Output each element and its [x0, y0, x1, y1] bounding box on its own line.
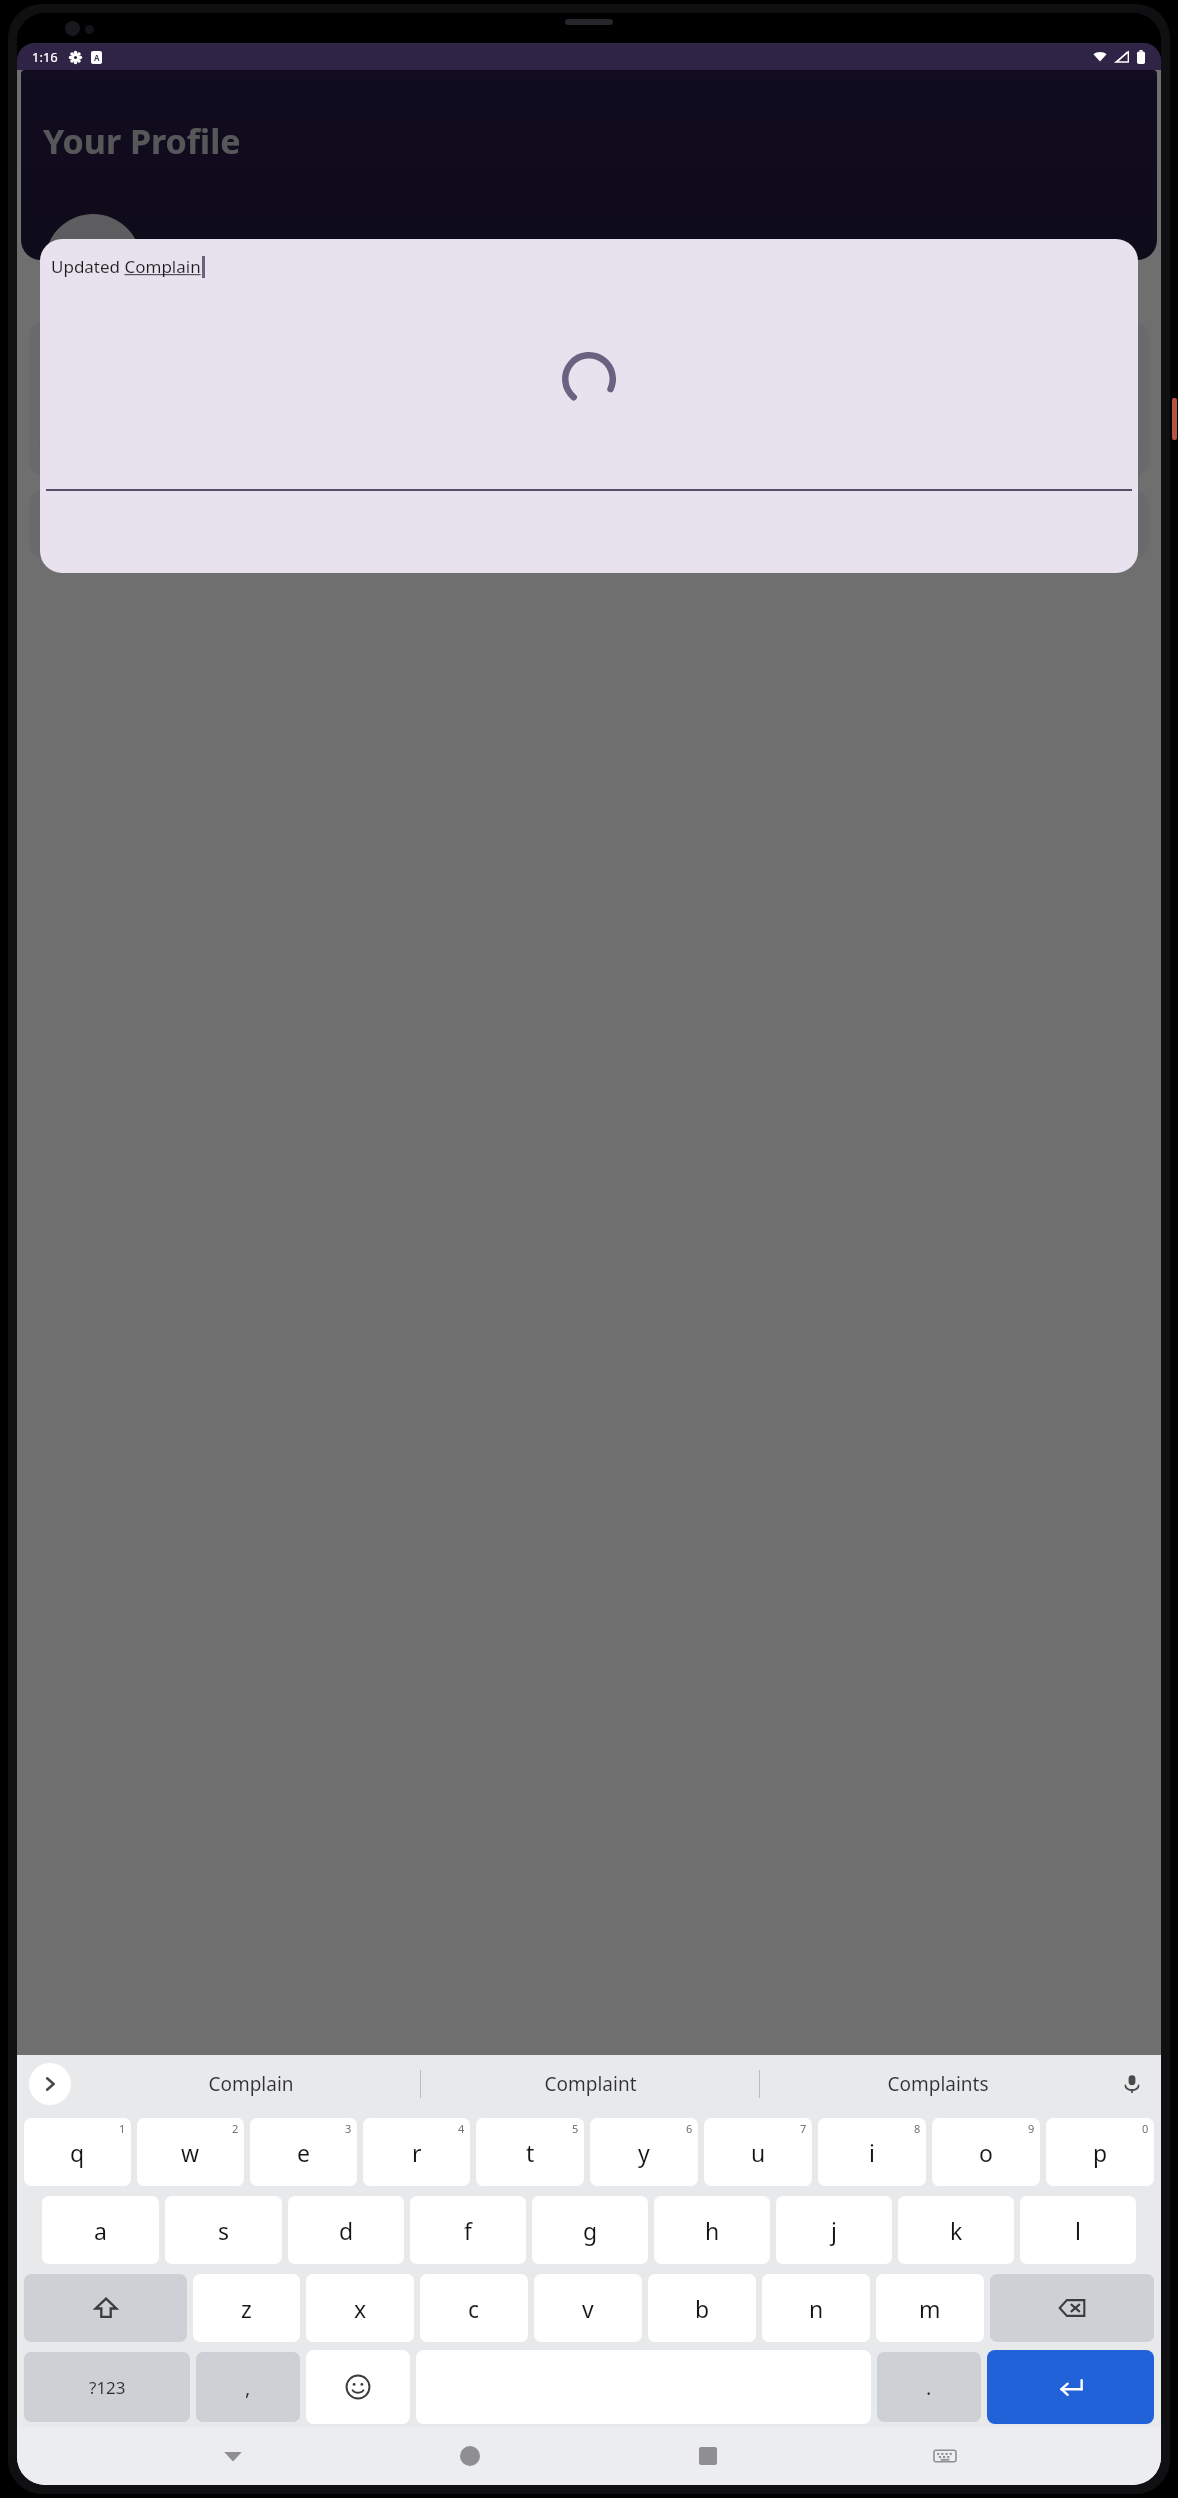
staticText: 4	[458, 2121, 465, 2136]
button[interactable]: u	[704, 2118, 812, 2186]
button[interactable]: i	[818, 2118, 926, 2186]
staticText: A	[94, 52, 100, 63]
staticText: p	[1093, 2137, 1108, 2168]
button[interactable]: Backspace	[990, 2274, 1154, 2342]
staticText: m	[919, 2293, 941, 2324]
button[interactable]: Complaints	[760, 2055, 1115, 2113]
button[interactable]: t	[476, 2118, 584, 2186]
staticText: i	[869, 2137, 875, 2168]
button[interactable]: r	[363, 2118, 470, 2186]
staticText: 0	[1142, 2121, 1149, 2136]
staticText: q	[70, 2137, 85, 2168]
staticText: 3	[345, 2121, 352, 2136]
button[interactable]: Switch keyboard	[923, 2434, 967, 2478]
staticText: d	[339, 2215, 354, 2246]
button[interactable]: Updated Complain	[51, 255, 1138, 278]
staticText: Updated Complain	[51, 255, 201, 278]
button[interactable]: k	[898, 2196, 1014, 2264]
button[interactable]: Emoji	[306, 2350, 410, 2424]
button[interactable]: o	[932, 2118, 1040, 2186]
button[interactable]: d	[288, 2196, 404, 2264]
button[interactable]: Complain	[81, 2055, 420, 2113]
button[interactable]: q	[24, 2118, 131, 2186]
staticText: v	[582, 2293, 594, 2324]
button[interactable]: Period	[877, 2352, 981, 2422]
button[interactable]: l	[1020, 2196, 1136, 2264]
button[interactable]: b	[648, 2274, 756, 2342]
staticText: 5	[572, 2121, 579, 2136]
staticText: s	[218, 2215, 230, 2246]
staticText: e	[297, 2137, 310, 2168]
button[interactable]: a	[42, 2196, 159, 2264]
staticText: z	[241, 2293, 252, 2324]
staticText: k	[950, 2215, 963, 2246]
button[interactable]: Enter	[987, 2350, 1154, 2424]
staticText: Complaints	[887, 2071, 989, 2097]
button[interactable]: h	[654, 2196, 770, 2264]
button[interactable]: 15	[39, 430, 111, 464]
staticText: j	[831, 2215, 837, 2246]
staticText: Complaint	[544, 2071, 637, 2097]
staticText: y	[638, 2137, 650, 2168]
staticText: h	[705, 2215, 720, 2246]
button[interactable]: y	[590, 2118, 698, 2186]
button[interactable]: Complaint	[421, 2055, 759, 2113]
button[interactable]: z	[193, 2274, 300, 2342]
button[interactable]: p	[1046, 2118, 1154, 2186]
staticText: w	[181, 2137, 200, 2168]
staticText: 6	[686, 2121, 693, 2136]
button[interactable]: Shift	[24, 2274, 187, 2342]
button[interactable]: e	[250, 2118, 357, 2186]
staticText: Complain	[208, 2071, 294, 2097]
button[interactable]: f	[410, 2196, 526, 2264]
button[interactable]: g	[532, 2196, 648, 2264]
button[interactable]: Comma	[196, 2352, 300, 2422]
button[interactable]: Home	[448, 2434, 492, 2478]
staticText: x	[354, 2293, 367, 2324]
staticText: Your Profile	[43, 118, 241, 164]
staticText: 1:16	[32, 48, 58, 66]
staticText: g	[583, 2215, 598, 2246]
staticText: n	[809, 2293, 824, 2324]
staticText: o	[979, 2137, 993, 2168]
button[interactable]: n	[762, 2274, 870, 2342]
button[interactable]: Back	[211, 2434, 255, 2478]
staticText: c	[468, 2293, 480, 2324]
button[interactable]: Recent apps	[686, 2434, 730, 2478]
staticText: 7	[800, 2121, 807, 2136]
button[interactable]: v	[534, 2274, 642, 2342]
staticText: 2	[232, 2121, 239, 2136]
button[interactable]: m	[876, 2274, 984, 2342]
staticText: t	[526, 2137, 535, 2168]
button[interactable]: Expand suggestions	[29, 2063, 71, 2105]
staticText: r	[412, 2137, 422, 2168]
button[interactable]: MOHIT-ADMIN	[29, 490, 1149, 558]
button[interactable]: x	[306, 2274, 414, 2342]
staticText: .	[926, 2374, 932, 2401]
staticText: ,	[245, 2374, 251, 2401]
button[interactable]: Voice input	[1115, 2067, 1149, 2101]
button[interactable]: s	[165, 2196, 282, 2264]
staticText: b	[695, 2293, 710, 2324]
staticText: ?123	[89, 2376, 126, 2399]
staticText: a	[94, 2215, 107, 2246]
staticText: f	[464, 2215, 472, 2246]
button[interactable]: Action	[1067, 430, 1139, 464]
button[interactable]: Symbols	[24, 2352, 190, 2422]
staticText: l	[1075, 2215, 1081, 2246]
button[interactable]: c	[420, 2274, 528, 2342]
staticText: 1	[119, 2121, 126, 2136]
button[interactable]: w	[137, 2118, 244, 2186]
button[interactable]: j	[776, 2196, 892, 2264]
staticText: 8	[914, 2121, 921, 2136]
staticText: 9	[1028, 2121, 1035, 2136]
staticText: u	[751, 2137, 766, 2168]
